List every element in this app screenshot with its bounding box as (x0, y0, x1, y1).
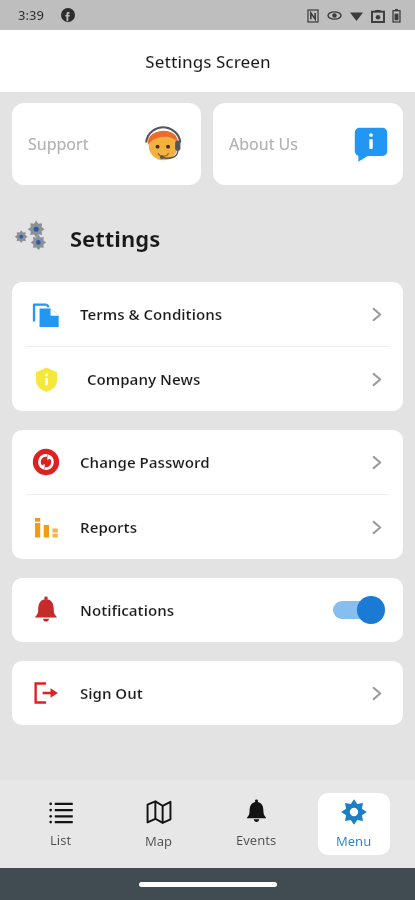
staticText: Company News (87, 369, 368, 389)
button[interactable]: Company News (12, 347, 403, 411)
button[interactable]: Terms & Conditions (12, 282, 403, 346)
button[interactable]: Events (220, 793, 292, 855)
button[interactable]: Map (123, 793, 195, 855)
staticText: Reports (80, 517, 368, 537)
button[interactable]: About Us (213, 103, 403, 185)
button[interactable]: Support (12, 103, 201, 185)
staticText: Settings Screen (145, 50, 271, 73)
staticText: Settings (70, 223, 161, 253)
button[interactable]: Reports (12, 495, 403, 559)
button[interactable]: Toggle notifications (333, 596, 385, 624)
button[interactable]: Menu (318, 793, 390, 855)
staticText: Support (28, 133, 143, 155)
staticText: List (50, 831, 72, 849)
staticText: Change Password (80, 452, 368, 472)
staticText: Notifications (80, 600, 333, 620)
button[interactable]: Notifications (12, 578, 403, 642)
button[interactable]: List (25, 793, 97, 855)
staticText: Events (236, 831, 277, 849)
button[interactable]: Change Password (12, 430, 403, 494)
staticText: Terms & Conditions (80, 304, 368, 324)
button[interactable]: Sign Out (12, 661, 403, 725)
staticText: Sign Out (80, 683, 368, 703)
staticText: About Us (229, 133, 353, 155)
staticText: Map (145, 832, 173, 850)
staticText: 3:39 (18, 6, 44, 24)
staticText: Menu (336, 832, 372, 850)
